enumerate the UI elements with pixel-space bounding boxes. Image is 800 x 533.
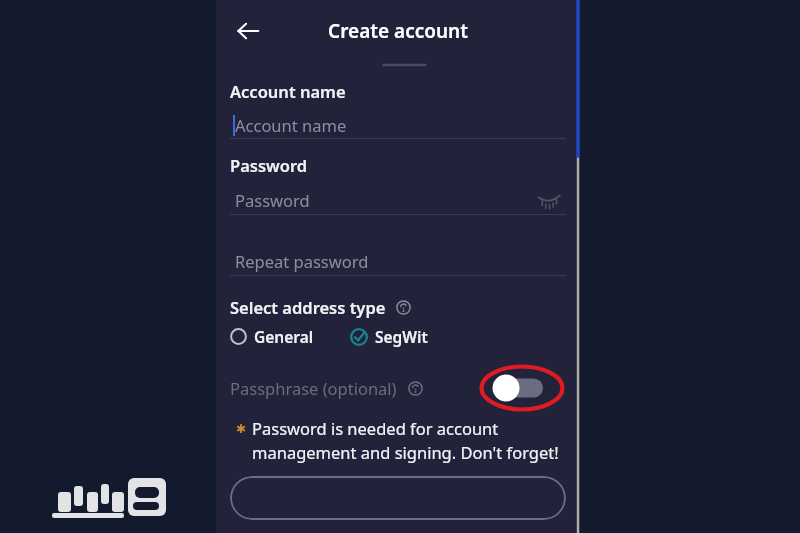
button[interactable]: Back <box>230 13 266 49</box>
button[interactable]: Repeat password <box>230 247 566 275</box>
button[interactable]: Help about passphrase <box>405 378 425 398</box>
button[interactable]: Account name <box>230 111 566 138</box>
button[interactable]: Show password <box>532 186 566 214</box>
staticText: Repeat password <box>235 250 369 272</box>
button[interactable]: Help about address type <box>393 297 413 317</box>
button[interactable]: Password <box>230 186 566 214</box>
staticText: Password is needed for account managemen… <box>252 417 566 464</box>
staticText: General <box>254 326 314 347</box>
staticText: Password <box>235 189 310 211</box>
staticText: Passphrase (optional) <box>230 377 397 399</box>
staticText: Create account <box>216 18 580 44</box>
staticText: Account name <box>230 80 346 102</box>
button[interactable]: SegWit <box>350 326 428 347</box>
staticText: Select address type <box>230 296 386 318</box>
staticText: ✱ <box>236 422 247 436</box>
button[interactable]: General <box>230 326 314 347</box>
staticText: Password <box>230 154 308 176</box>
button[interactable]: Toggle passphrase <box>480 365 564 411</box>
button[interactable] <box>230 476 566 520</box>
staticText: Account name <box>235 114 347 136</box>
staticText: SegWit <box>375 326 428 347</box>
